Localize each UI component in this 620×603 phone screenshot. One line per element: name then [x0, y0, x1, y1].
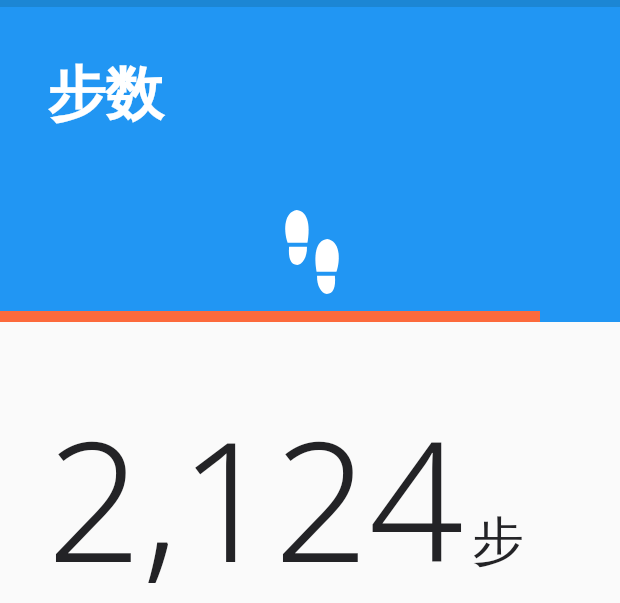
button[interactable]: 2,124	[47, 385, 524, 603]
other: Footsteps	[284, 210, 340, 294]
staticText: 步	[472, 509, 524, 575]
staticText: 2,124	[47, 385, 464, 603]
button[interactable]	[0, 311, 620, 322]
button[interactable]: 步数	[47, 58, 163, 131]
